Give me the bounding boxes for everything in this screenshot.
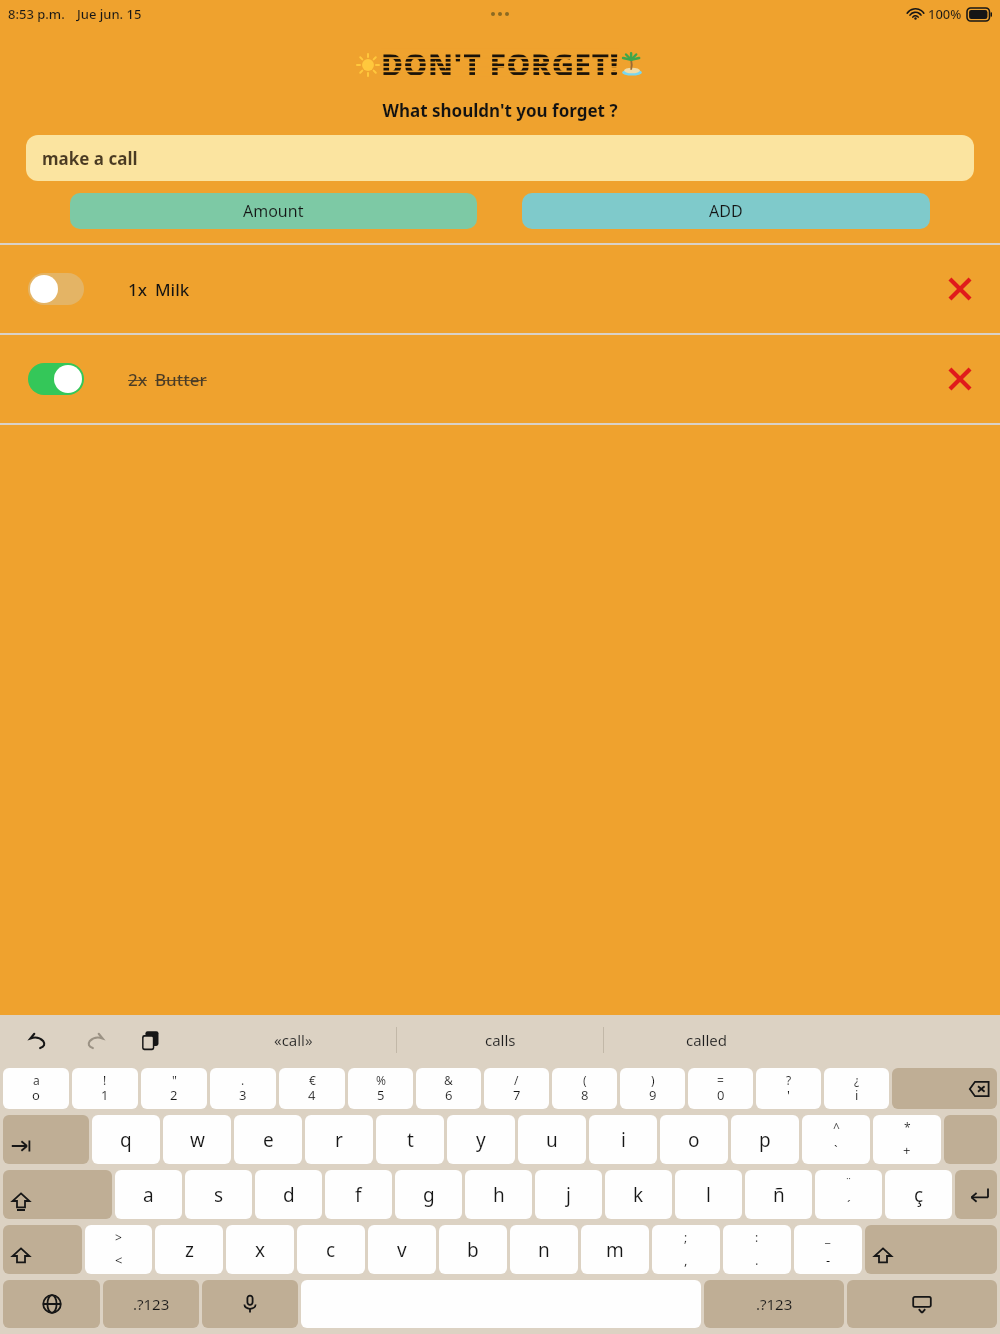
button[interactable]: / (484, 1068, 549, 1109)
button[interactable]: .?123 (103, 1280, 199, 1328)
button[interactable]: % (348, 1068, 413, 1109)
button[interactable]: Hide keyboard (847, 1280, 997, 1328)
button[interactable]: * (873, 1115, 941, 1164)
button[interactable]: z (155, 1225, 223, 1274)
button[interactable]: t (376, 1115, 444, 1164)
button[interactable]: Change keyboard (3, 1280, 100, 1328)
button[interactable]: e (234, 1115, 302, 1164)
button[interactable]: ¨ (815, 1170, 882, 1219)
staticText: 8 (581, 1086, 589, 1104)
button[interactable]: Shift (865, 1225, 997, 1274)
button[interactable]: h (465, 1170, 532, 1219)
button[interactable]: Delete Butter (934, 353, 986, 405)
staticText: " (172, 1072, 177, 1088)
staticText: w (190, 1127, 205, 1153)
button[interactable]: m (581, 1225, 649, 1274)
button[interactable]: Caps lock (3, 1170, 112, 1219)
staticText: l (706, 1182, 711, 1208)
button[interactable]: Shift (3, 1225, 82, 1274)
button[interactable]: Amount (70, 193, 477, 229)
staticText: Milk (155, 278, 190, 301)
button[interactable]: called (604, 1015, 810, 1065)
button[interactable]: w (163, 1115, 231, 1164)
staticText: .?123 (133, 1294, 170, 1314)
staticText: ¨ (845, 1174, 852, 1190)
button[interactable]: Delete Milk (934, 263, 986, 315)
button[interactable]: u (518, 1115, 586, 1164)
button[interactable] (944, 1115, 997, 1164)
button[interactable]: " (141, 1068, 207, 1109)
button[interactable]: r (305, 1115, 373, 1164)
button[interactable]: Backspace (892, 1068, 997, 1109)
button[interactable]: > (85, 1225, 152, 1274)
button[interactable]: n (510, 1225, 578, 1274)
button[interactable]: a (115, 1170, 182, 1219)
button[interactable]: y (447, 1115, 515, 1164)
staticText: u (546, 1127, 558, 1153)
staticText: t (407, 1127, 414, 1153)
button[interactable]: ( (552, 1068, 617, 1109)
staticText: + (903, 1141, 911, 1159)
button[interactable]: . (210, 1068, 276, 1109)
button[interactable]: v (368, 1225, 436, 1274)
staticText: .?123 (756, 1294, 793, 1314)
button[interactable]: = (688, 1068, 753, 1109)
button[interactable]: ? (756, 1068, 821, 1109)
button[interactable]: Done, off (28, 273, 84, 305)
staticText: calls (485, 1030, 516, 1050)
button[interactable]: l (675, 1170, 742, 1219)
button[interactable]: «call» (190, 1015, 396, 1065)
button[interactable]: Done, on (28, 363, 84, 395)
button[interactable]: ñ (745, 1170, 812, 1219)
button[interactable]: € (279, 1068, 345, 1109)
button[interactable]: ¿ (824, 1068, 889, 1109)
button[interactable]: ) (620, 1068, 685, 1109)
staticText: & (444, 1072, 453, 1088)
button[interactable]: d (255, 1170, 322, 1219)
button[interactable]: a (3, 1068, 69, 1109)
button[interactable]: calls (397, 1015, 603, 1065)
staticText: make a call (42, 147, 138, 170)
button[interactable]: k (605, 1170, 672, 1219)
button[interactable]: ç (885, 1170, 952, 1219)
button[interactable]: Return (955, 1170, 997, 1219)
staticText: n (538, 1237, 550, 1263)
button[interactable]: Redo (78, 1024, 110, 1056)
button[interactable]: x (226, 1225, 294, 1274)
button[interactable]: _ (794, 1225, 862, 1274)
staticText: e (263, 1127, 274, 1153)
button[interactable]: : (723, 1225, 791, 1274)
button[interactable]: s (185, 1170, 252, 1219)
button[interactable]: i (589, 1115, 657, 1164)
button[interactable]: ; (652, 1225, 720, 1274)
staticText: g (423, 1182, 435, 1208)
staticText: o (688, 1127, 700, 1153)
button[interactable]: ADD (522, 193, 930, 229)
button[interactable]: .?123 (704, 1280, 844, 1328)
button[interactable]: Paste (134, 1024, 166, 1056)
button[interactable]: o (660, 1115, 728, 1164)
button[interactable]: j (535, 1170, 602, 1219)
button[interactable]: Undo (22, 1024, 54, 1056)
staticText: p (759, 1127, 771, 1153)
button[interactable]: ! (72, 1068, 138, 1109)
button[interactable]: q (92, 1115, 160, 1164)
button[interactable]: f (325, 1170, 392, 1219)
staticText: ? (786, 1072, 792, 1088)
button[interactable]: p (731, 1115, 799, 1164)
staticText: q (120, 1127, 132, 1153)
button[interactable]: & (416, 1068, 481, 1109)
button[interactable]: make a call (26, 135, 974, 181)
button[interactable]: c (297, 1225, 365, 1274)
staticText: a (33, 1072, 40, 1088)
button[interactable]: Tab (3, 1115, 89, 1164)
button[interactable]: g (395, 1170, 462, 1219)
button[interactable]: b (439, 1225, 507, 1274)
button[interactable]: ^ (802, 1115, 870, 1164)
button[interactable]: Dictate (202, 1280, 298, 1328)
staticText: f (355, 1182, 362, 1208)
staticText: Amount (243, 200, 304, 222)
staticText: ^ (833, 1119, 840, 1135)
staticText: d (283, 1182, 295, 1208)
